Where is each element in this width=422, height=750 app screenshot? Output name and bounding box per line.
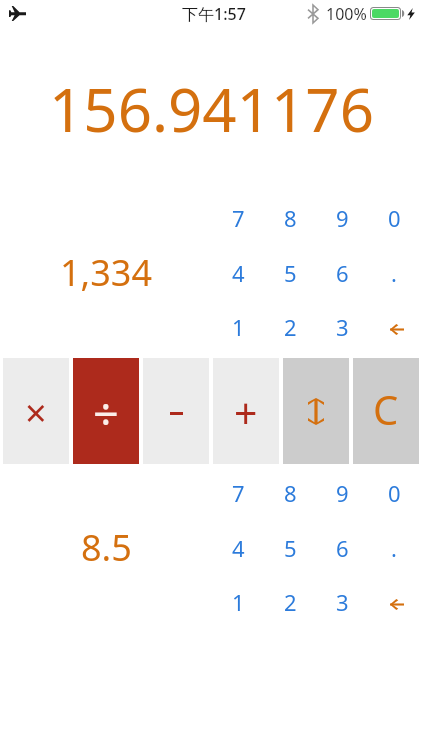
staticText: 100% [326,3,367,25]
button[interactable]: 1 [213,575,264,629]
staticText: + [234,385,258,441]
staticText: ÷ [93,383,119,444]
button[interactable]: 0 [368,465,420,520]
button[interactable]: Divide [73,358,139,464]
staticText: 4 [232,258,245,288]
button[interactable]: 0 [368,190,420,245]
button[interactable]: Add [213,358,279,464]
staticText: 156.941176 [49,68,374,150]
button[interactable]: 9 [316,190,368,245]
staticText: 1 [232,587,245,617]
button[interactable]: Swap operands [283,358,349,464]
button[interactable]: 7 [213,190,264,245]
staticText: C [373,382,399,436]
button[interactable]: Multiply [3,358,69,464]
staticText: 0 [388,478,401,508]
button[interactable]: Clear [353,358,419,464]
staticText: 6 [336,533,349,563]
staticText: 2 [284,587,297,617]
staticText: 6 [336,258,349,288]
staticText: 1 [232,312,245,342]
button[interactable]: 5 [264,520,316,575]
staticText: 8.5 [81,523,132,572]
staticText: 9 [336,478,349,508]
button[interactable]: 7 [213,465,264,520]
button[interactable]: 4 [213,245,264,300]
staticText: 8 [284,203,297,233]
button[interactable]: 3 [316,300,368,354]
button[interactable]: 4 [213,520,264,575]
button[interactable]: . [368,520,420,575]
staticText: 8 [284,478,297,508]
button[interactable]: 2 [264,575,316,629]
staticText: 2 [284,312,297,342]
staticText: 下午1:57 [182,3,246,25]
staticText: × [25,386,47,438]
button[interactable]: 5 [264,245,316,300]
staticText: 4 [232,533,245,563]
staticText: 9 [336,203,349,233]
staticText: . [391,258,397,288]
button[interactable]: 1 [213,300,264,354]
button[interactable]: 2 [264,300,316,354]
button[interactable]: Backspace [368,300,420,354]
staticText: 7 [232,203,245,233]
staticText: 7 [232,478,245,508]
staticText: 1,334 [60,248,153,297]
button[interactable]: 6 [316,520,368,575]
button[interactable]: 8 [264,190,316,245]
button[interactable]: Subtract [143,358,209,464]
staticText: 0 [388,203,401,233]
button[interactable]: 3 [316,575,368,629]
button[interactable]: 6 [316,245,368,300]
button[interactable]: . [368,245,420,300]
staticText: 3 [336,312,349,342]
button[interactable]: Backspace [368,575,420,629]
button[interactable]: 9 [316,465,368,520]
button[interactable]: 8 [264,465,316,520]
staticText: 5 [284,258,297,288]
staticText: 3 [336,587,349,617]
staticText: 5 [284,533,297,563]
staticText: . [391,533,397,563]
